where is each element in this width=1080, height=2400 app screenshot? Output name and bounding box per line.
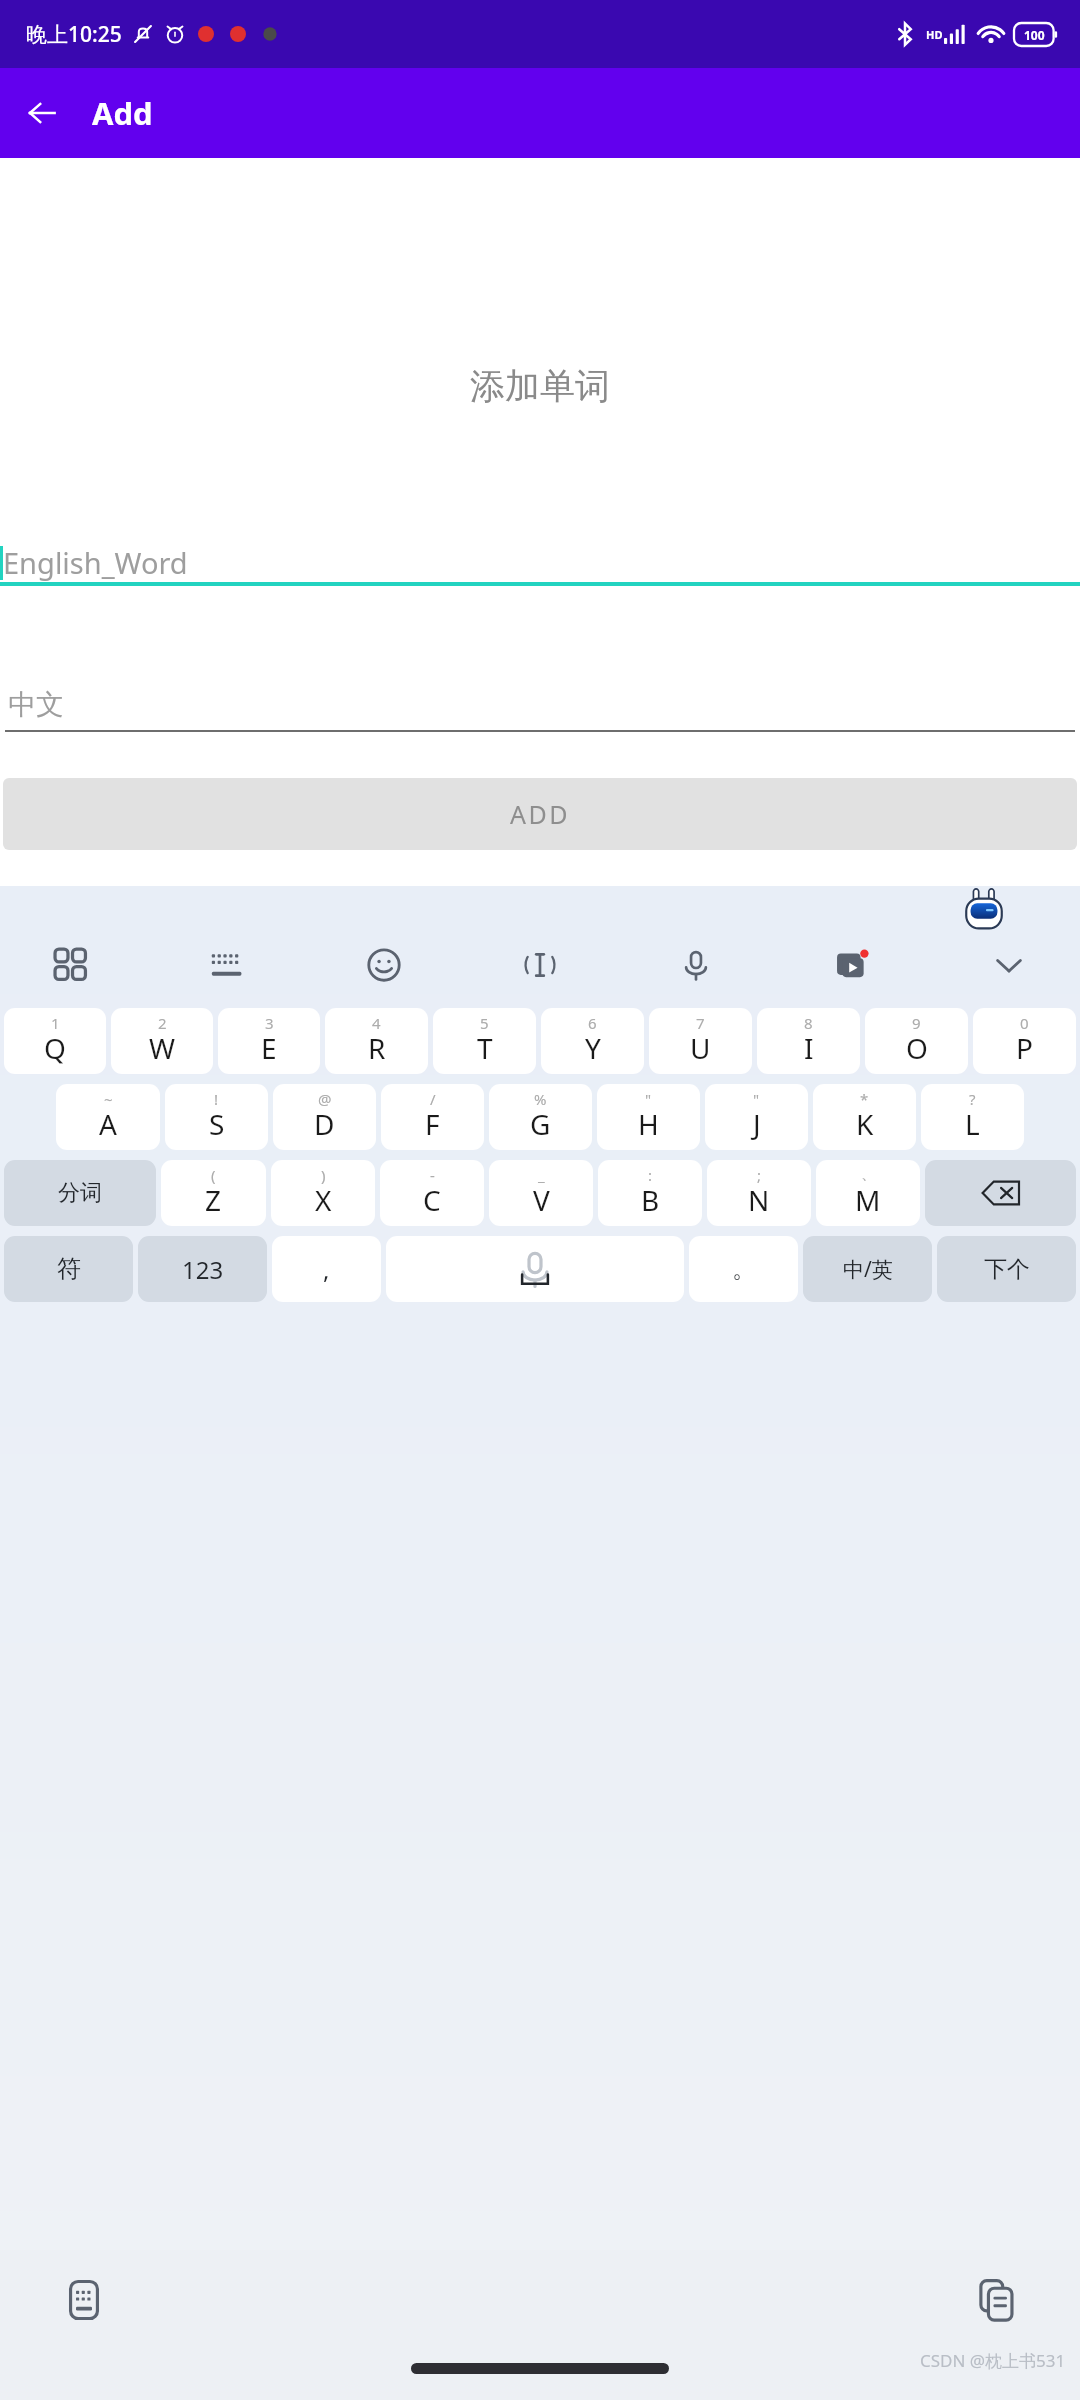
button[interactable]: Keyboard [196,934,258,996]
staticText: 1 [51,1013,60,1033]
staticText: ? [969,1089,976,1109]
button[interactable]: 7 [649,1008,752,1074]
button[interactable]: Voice input [665,934,727,996]
button[interactable]: Space [386,1236,684,1302]
staticText: Y [585,1029,601,1067]
staticText: ~ [104,1089,113,1109]
button[interactable]: English_Word [0,530,1080,586]
button[interactable]: 6 [541,1008,644,1074]
staticText: Add [92,92,153,134]
button[interactable]: Clipboard [968,2272,1024,2328]
staticText: J [753,1105,761,1143]
button[interactable]: , [272,1236,381,1302]
staticText: B [641,1181,660,1219]
staticText: * [860,1089,869,1109]
button[interactable]: 中文 [5,678,1075,732]
staticText: G [530,1105,551,1143]
button[interactable]: ADD [3,778,1077,850]
staticText: F [425,1105,440,1143]
button[interactable]: " [597,1084,700,1150]
button[interactable]: 9 [865,1008,968,1074]
staticText: 2 [158,1013,167,1033]
staticText: / [430,1089,436,1109]
button[interactable]: Emoji [353,934,415,996]
staticText: T [477,1029,493,1067]
button[interactable]: 2 [111,1008,213,1074]
button[interactable]: Assistant [960,888,1008,936]
staticText: HD [926,27,943,42]
button[interactable]: 符 [4,1236,133,1302]
staticText: 5 [480,1013,489,1033]
staticText: " [645,1089,652,1109]
staticText: 0 [1020,1013,1029,1033]
staticText: O [906,1029,928,1067]
staticText: 100 [1024,27,1045,43]
button[interactable]: * [813,1084,916,1150]
button[interactable]: ) [271,1160,375,1226]
button[interactable]: / [381,1084,484,1150]
button[interactable]: 123 [138,1236,267,1302]
button[interactable]: Back [14,85,70,141]
staticText: 123 [182,1253,224,1286]
staticText: P [1016,1029,1033,1067]
button[interactable]: 分词 [4,1160,156,1226]
staticText: N [748,1181,770,1219]
button[interactable]: % [489,1084,592,1150]
staticText: 3 [265,1013,274,1033]
staticText: " [753,1089,760,1109]
button[interactable]: ? [921,1084,1024,1150]
button[interactable]: Text edit [509,934,571,996]
button[interactable]: 下个 [937,1236,1076,1302]
button[interactable]: _ [489,1160,593,1226]
staticText: 晚上10:25 [26,20,122,49]
button[interactable]: Switch keyboard [56,2272,112,2328]
button[interactable]: - [380,1160,484,1226]
button[interactable]: 中/英 [803,1236,932,1302]
staticText: W [149,1029,176,1067]
button[interactable]: ~ [56,1084,160,1150]
staticText: X [315,1181,332,1219]
staticText: 7 [696,1013,705,1033]
staticText: 、 [861,1165,876,1184]
staticText: 添加单词 [0,364,1080,408]
staticText: ( [211,1165,216,1185]
staticText: 符 [57,1254,81,1284]
staticText: 下个 [984,1255,1030,1284]
staticText: S [209,1105,225,1143]
button[interactable]: ( [161,1160,266,1226]
staticText: A [99,1105,117,1143]
staticText: ; [757,1165,762,1185]
staticText: C [423,1181,441,1219]
staticText: _ [538,1165,545,1185]
staticText: % [534,1089,547,1109]
staticText: 4 [372,1013,381,1033]
staticText: - [430,1165,435,1185]
button[interactable]: : [598,1160,702,1226]
button[interactable]: 3 [218,1008,320,1074]
button[interactable]: @ [273,1084,376,1150]
button[interactable]: 4 [325,1008,428,1074]
button[interactable]: 0 [973,1008,1076,1074]
staticText: V [533,1181,550,1219]
button[interactable]: Media [822,934,884,996]
button[interactable]: 、 [816,1160,920,1226]
button[interactable]: ; [707,1160,811,1226]
button[interactable]: 8 [757,1008,860,1074]
staticText: 中/英 [843,1255,893,1284]
button[interactable]: Hide keyboard [978,934,1040,996]
button[interactable]: Apps [40,934,102,996]
staticText: K [856,1105,874,1143]
button[interactable]: 1 [4,1008,106,1074]
button[interactable]: 5 [433,1008,536,1074]
staticText: English_Word [3,543,188,582]
staticText: Q [44,1029,66,1067]
button[interactable]: Backspace [925,1160,1076,1226]
staticText: 。 [732,1254,756,1284]
staticText: , [323,1253,330,1286]
staticText: I [804,1029,814,1067]
staticText: R [368,1029,386,1067]
button[interactable]: ! [165,1084,268,1150]
button[interactable]: " [705,1084,808,1150]
staticText: H [638,1105,659,1143]
button[interactable]: 。 [689,1236,798,1302]
